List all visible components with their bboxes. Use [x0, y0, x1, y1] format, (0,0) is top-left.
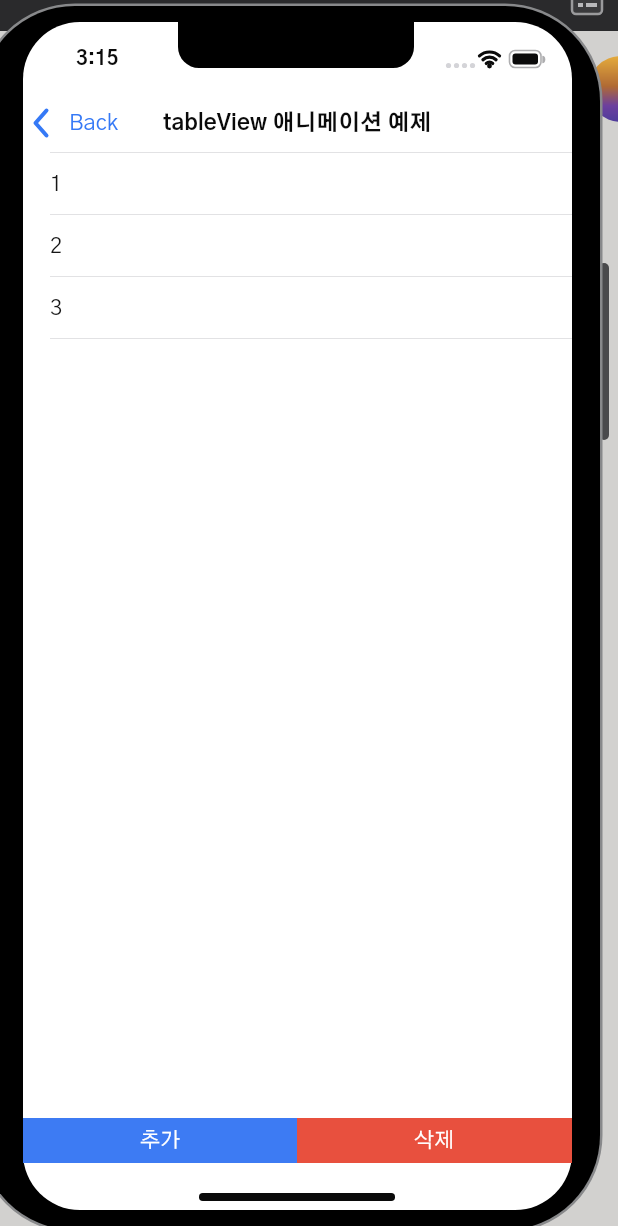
button[interactable]: 삭제	[297, 1118, 572, 1163]
button[interactable]: 추가	[23, 1118, 297, 1163]
button[interactable]: 1	[23, 153, 572, 214]
staticText: 1	[50, 173, 63, 195]
staticText: 추가	[140, 1130, 181, 1151]
staticText: tableView 애니메이션 예제	[163, 112, 432, 134]
button[interactable]: 2	[23, 215, 572, 276]
button[interactable]: Back	[26, 104, 118, 141]
staticText: 3:15	[76, 49, 119, 69]
staticText: Back	[69, 112, 118, 134]
staticText: 삭제	[414, 1130, 455, 1151]
staticText: 3	[50, 297, 63, 319]
button[interactable]: 3	[23, 277, 572, 338]
staticText: 2	[50, 235, 63, 257]
